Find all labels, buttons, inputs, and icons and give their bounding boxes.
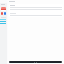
button[interactable] bbox=[1, 7, 6, 11]
button[interactable] bbox=[9, 4, 63, 17]
button[interactable]: Blue tile bbox=[4, 12, 6, 15]
button[interactable]: Red tile bbox=[1, 12, 3, 15]
button[interactable]: Bottom navigation bbox=[9, 61, 62, 63]
